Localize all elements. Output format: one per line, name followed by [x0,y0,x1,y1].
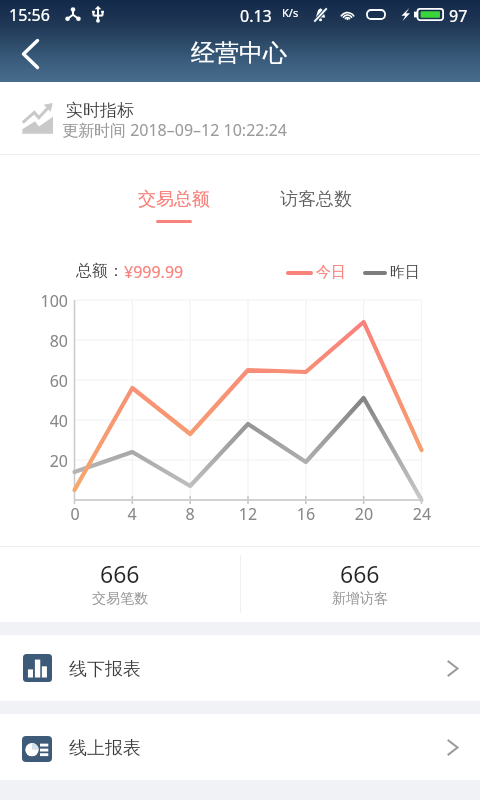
staticText: 交易总额 [138,188,210,211]
staticText: 0.13 [240,5,272,27]
staticText: 更新时间 2018–09–12 10:22:24 [62,119,288,141]
button[interactable]: Back [0,26,60,82]
staticText: 实时指标 [66,100,134,121]
button[interactable]: 666 [0,547,240,622]
staticText: 经营中心 [191,38,287,68]
staticText: 访客总数 [280,188,352,211]
button[interactable]: 交易总额 [128,182,220,232]
staticText: 0 [60,503,90,525]
staticText: 12 [233,503,263,525]
staticText: 交易笔数 [92,590,148,608]
staticText: 8 [175,503,205,525]
button[interactable]: 访客总数 [270,182,362,232]
staticText: 80 [28,330,68,352]
staticText: 今日 [316,263,346,282]
staticText: 666 [100,558,140,589]
staticText: 新增访客 [332,590,388,608]
staticText: 97 [449,5,468,27]
button[interactable]: 线上报表 [0,714,480,780]
staticText: K/s [282,5,299,20]
button[interactable]: 线下报表 [0,635,480,701]
staticText: 20 [349,503,379,525]
staticText: 线下报表 [69,658,141,681]
staticText: 昨日 [390,263,420,282]
staticText: 24 [407,503,437,525]
staticText: 666 [340,558,380,589]
staticText: 线上报表 [69,737,141,760]
button[interactable]: 666 [240,547,480,622]
staticText: 60 [28,370,68,392]
staticText: 16 [291,503,321,525]
staticText: 100 [28,290,68,312]
staticText: 40 [28,410,68,432]
staticText: 总额： [76,261,124,281]
staticText: ¥999.99 [124,261,184,283]
staticText: 20 [28,450,68,472]
staticText: 15:56 [9,4,50,26]
staticText: 4 [117,503,147,525]
